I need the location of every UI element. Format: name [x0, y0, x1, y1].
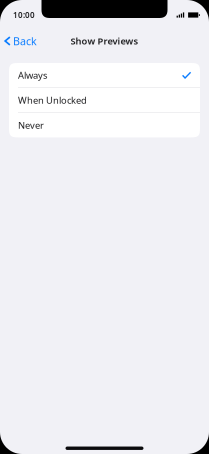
- staticText: 10:00: [13, 10, 35, 20]
- staticText: Back: [13, 34, 37, 48]
- button[interactable]: Never: [9, 113, 200, 137]
- staticText: Show Previews: [70, 35, 138, 47]
- button[interactable]: When Unlocked: [9, 88, 200, 112]
- staticText: Never: [18, 119, 44, 131]
- button[interactable]: Back: [0, 31, 37, 51]
- button[interactable]: Always: [9, 63, 200, 87]
- staticText: Always: [18, 69, 47, 81]
- staticText: When Unlocked: [18, 94, 87, 106]
